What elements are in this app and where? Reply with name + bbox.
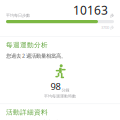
staticText: 活動詳細資料 xyxy=(6,108,48,116)
staticText: 平均每週運動時數 xyxy=(44,94,76,99)
staticText: 10163 xyxy=(73,2,108,18)
staticText: 分鐘 xyxy=(61,88,69,93)
staticText: 98 xyxy=(50,80,60,93)
staticText: 您過去 2 週活動量相當高。 xyxy=(6,52,66,59)
staticText: 平均每日步數 xyxy=(6,13,30,18)
staticText: 3700 xyxy=(101,25,109,30)
staticText: 步 xyxy=(110,13,114,18)
staticText: 步 xyxy=(110,25,114,30)
staticText: 每週運動分析 xyxy=(6,41,48,49)
